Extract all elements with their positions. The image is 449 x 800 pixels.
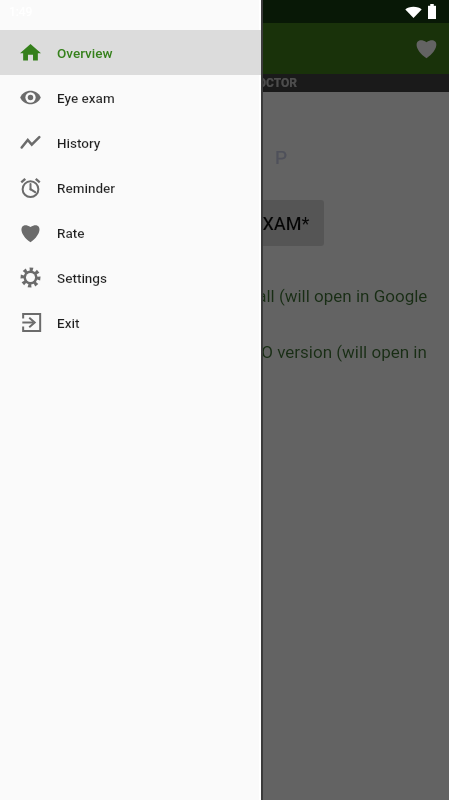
button[interactable]: Eye exam [0,75,261,120]
staticText: EYE DOCTOR [226,76,297,90]
button[interactable]: Settings [0,255,261,300]
staticText: Exit [57,315,80,331]
staticText: Overview [57,45,113,61]
staticText: History [57,135,101,151]
staticText: P [275,146,287,168]
staticText: Eye exam: check your vision - PRO versio… [16,342,427,362]
button[interactable]: History [0,120,261,165]
staticText: Rate [57,225,85,241]
button[interactable]: START EYE EXAM* [144,200,324,246]
staticText: START EYE EXAM* [158,213,310,234]
button[interactable]: Eye exam: check your vision - PRO versio… [0,336,449,368]
staticText: Reminder [57,180,116,196]
staticText: Eye exam [72,38,154,60]
button[interactable]: Exit [0,300,261,345]
button[interactable]: Eye exam - the full version - install (w… [0,280,449,312]
staticText: Eye exam [57,90,115,106]
button[interactable]: Close navigation drawer [0,0,449,800]
staticText: Settings [57,270,107,286]
button[interactable]: Rate [0,210,261,255]
button[interactable]: Overview [0,30,261,75]
button[interactable]: Reminder [0,165,261,210]
button[interactable]: Rate this app [405,28,447,70]
staticText: Eye exam - the full version - install (w… [20,286,428,306]
